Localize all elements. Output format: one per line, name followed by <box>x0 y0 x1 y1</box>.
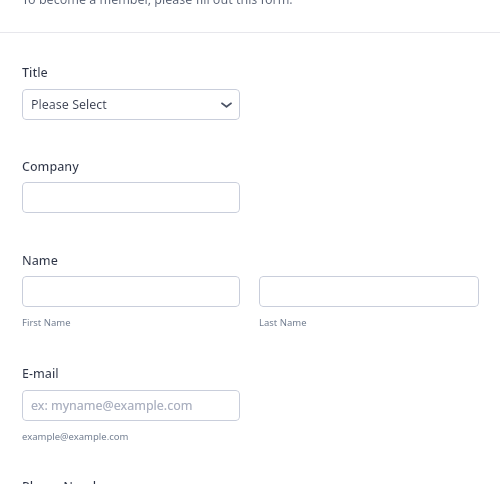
staticText: E-mail <box>22 365 59 382</box>
staticText: Name <box>22 252 58 269</box>
staticText: example@example.com <box>22 430 129 443</box>
button[interactable]: Company <box>22 182 240 213</box>
button[interactable]: E-mail <box>22 390 240 421</box>
staticText: Phone Number <box>22 478 113 484</box>
button[interactable]: Title, Please Select <box>22 89 240 120</box>
button[interactable]: Last Name <box>259 276 479 307</box>
staticText: Title <box>22 64 48 81</box>
staticText: To become a member, please fill out this… <box>22 0 293 8</box>
staticText: ex: myname@example.com <box>31 397 193 414</box>
button[interactable]: First Name <box>22 276 240 307</box>
staticText: Last Name <box>259 316 307 329</box>
staticText: Company <box>22 158 79 175</box>
staticText: First Name <box>22 316 71 329</box>
staticText: Please Select <box>31 96 107 113</box>
